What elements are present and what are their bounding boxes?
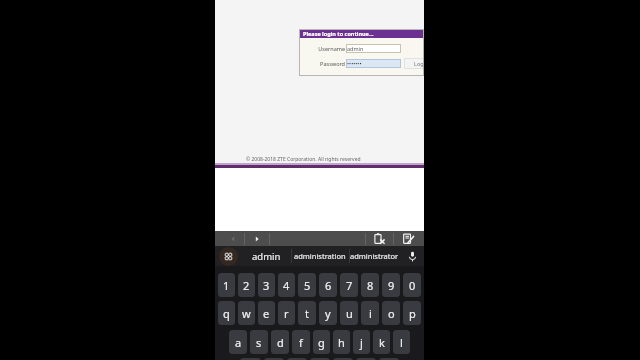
staticText: 8 [367, 278, 374, 293]
button[interactable]: 7 [340, 273, 358, 297]
staticText: r [284, 306, 289, 321]
button[interactable]: k [373, 330, 390, 354]
button[interactable]: 4 [278, 273, 295, 297]
button[interactable]: 0 [403, 273, 421, 297]
button[interactable]: c [287, 358, 307, 360]
button[interactable]: n [356, 358, 376, 360]
button[interactable]: admin [346, 44, 401, 53]
staticText: Login [414, 60, 424, 67]
button[interactable]: 5 [298, 273, 316, 297]
button[interactable]: x [264, 358, 284, 360]
staticText: admin [347, 45, 364, 52]
button[interactable]: z [240, 358, 261, 360]
staticText: 0 [409, 278, 416, 293]
button[interactable]: administration [291, 246, 349, 266]
button[interactable]: r [278, 301, 295, 325]
staticText: 9 [388, 278, 395, 293]
staticText: Password [299, 60, 345, 67]
staticText: h [338, 335, 345, 350]
button[interactable]: Next field [244, 231, 269, 246]
staticText: f [299, 335, 303, 350]
staticText: w [242, 306, 251, 321]
staticText: u [346, 306, 353, 321]
button[interactable]: v [310, 358, 330, 360]
button[interactable]: h [333, 330, 350, 354]
staticText: © 2008-2018 ZTE Corporation. All rights … [246, 156, 361, 163]
staticText: ••••••• [347, 60, 362, 67]
button[interactable]: 1 [218, 273, 235, 297]
staticText: 3 [263, 278, 270, 293]
staticText: Please login to continue... [303, 30, 374, 37]
button[interactable]: b [333, 358, 353, 360]
button[interactable]: m [379, 358, 399, 360]
staticText: admin [252, 250, 281, 263]
button[interactable]: u [340, 301, 358, 325]
button[interactable]: d [271, 330, 289, 354]
button[interactable]: o [382, 301, 400, 325]
button[interactable]: Clear clipboard [365, 231, 393, 246]
staticText: q [223, 306, 230, 321]
button[interactable]: admin [242, 246, 291, 266]
staticText: k [379, 335, 385, 350]
staticText: administration [294, 251, 346, 261]
button[interactable]: p [403, 301, 421, 325]
staticText: 5 [304, 278, 311, 293]
staticText: administrator [350, 251, 399, 261]
button[interactable]: Edit text [393, 231, 424, 246]
button[interactable]: ••••••• [346, 59, 401, 68]
button[interactable]: s [250, 330, 268, 354]
staticText: t [305, 306, 309, 321]
staticText: y [325, 306, 331, 321]
staticText: 6 [325, 278, 332, 293]
button[interactable]: g [313, 330, 330, 354]
button[interactable]: i [361, 301, 379, 325]
button[interactable]: Keyboard menu [215, 246, 242, 266]
staticText: a [235, 335, 242, 350]
button[interactable]: 2 [238, 273, 255, 297]
staticText: o [388, 306, 395, 321]
button[interactable]: a [229, 330, 247, 354]
staticText: 7 [346, 278, 353, 293]
button[interactable]: t [298, 301, 316, 325]
button[interactable]: q [218, 301, 235, 325]
button[interactable]: Voice input [400, 246, 424, 266]
staticText: p [409, 306, 416, 321]
button[interactable]: Previous field [221, 231, 244, 246]
button[interactable]: 9 [382, 273, 400, 297]
button[interactable]: 3 [258, 273, 275, 297]
button[interactable]: w [238, 301, 255, 325]
button[interactable]: e [258, 301, 275, 325]
staticText: j [360, 335, 363, 350]
staticText: e [263, 306, 270, 321]
button[interactable]: 8 [361, 273, 379, 297]
staticText: 2 [243, 278, 250, 293]
button[interactable]: Login [404, 58, 424, 69]
button[interactable]: administrator [349, 246, 400, 266]
button[interactable]: 6 [319, 273, 337, 297]
button[interactable]: f [292, 330, 310, 354]
staticText: 4 [283, 278, 290, 293]
staticText: s [256, 335, 262, 350]
button[interactable]: y [319, 301, 337, 325]
button[interactable]: l [393, 330, 410, 354]
staticText: i [369, 306, 372, 321]
staticText: 1 [223, 278, 230, 293]
staticText: l [400, 335, 403, 350]
staticText: g [318, 335, 325, 350]
button[interactable]: j [353, 330, 370, 354]
staticText: d [277, 335, 284, 350]
staticText: Username [299, 45, 345, 52]
